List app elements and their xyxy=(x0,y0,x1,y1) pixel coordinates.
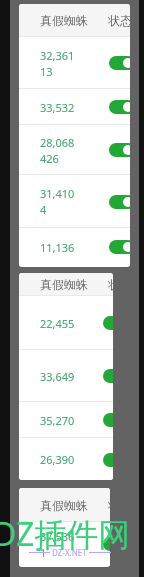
staticText: 真假蜘蛛 xyxy=(40,13,88,28)
staticText: DZ插件网 xyxy=(0,512,143,556)
button[interactable]: 26,390 xyxy=(19,438,113,480)
button[interactable]: 11,136 xyxy=(19,228,130,266)
staticText: 33,649 xyxy=(40,369,75,384)
button[interactable]: 31,410 4 xyxy=(19,175,130,228)
staticText: 状态 xyxy=(108,498,110,513)
button[interactable]: Toggle status xyxy=(103,316,113,330)
staticText: 状态 xyxy=(108,277,113,292)
button[interactable]: 32,361 13 xyxy=(19,37,130,89)
button[interactable]: Toggle status xyxy=(103,369,113,383)
staticText: 32,361 13 xyxy=(40,48,76,79)
button[interactable]: 33,532 xyxy=(19,89,130,125)
button[interactable]: 37,536 1 xyxy=(19,522,110,566)
staticText: 35,270 xyxy=(40,413,75,428)
button[interactable]: 28,068 426 xyxy=(19,125,130,175)
button[interactable]: Toggle status xyxy=(109,143,130,157)
staticText: 31,410 4 xyxy=(40,186,76,217)
button[interactable]: Toggle status xyxy=(103,453,113,467)
staticText: DZ-X.NET xyxy=(52,547,87,558)
button[interactable]: 真假蜘蛛 xyxy=(19,4,130,37)
button[interactable]: 真假蜘蛛 xyxy=(19,273,113,296)
staticText: 状态 xyxy=(108,13,130,28)
button[interactable]: Toggle status xyxy=(103,537,110,551)
button[interactable]: 22,455 xyxy=(19,296,113,350)
button[interactable]: 33,649 xyxy=(19,350,113,402)
button[interactable]: Toggle status xyxy=(103,413,113,427)
staticText: 11,136 xyxy=(40,240,75,255)
button[interactable]: 真假蜘蛛 xyxy=(19,488,110,522)
staticText: 22,455 xyxy=(40,316,75,331)
button[interactable]: Toggle status xyxy=(109,56,130,70)
button[interactable]: 35,270 xyxy=(19,402,113,438)
button[interactable]: Toggle status xyxy=(109,100,130,114)
staticText: 33,532 xyxy=(40,100,75,115)
staticText: 真假蜘蛛 xyxy=(40,498,88,513)
staticText: 28,068 426 xyxy=(40,135,76,166)
button[interactable]: Toggle status xyxy=(109,240,130,254)
staticText: 37,536 1 xyxy=(40,529,76,560)
staticText: 26,390 xyxy=(40,452,75,467)
button[interactable]: Toggle status xyxy=(109,195,130,209)
staticText: 真假蜘蛛 xyxy=(40,277,88,292)
